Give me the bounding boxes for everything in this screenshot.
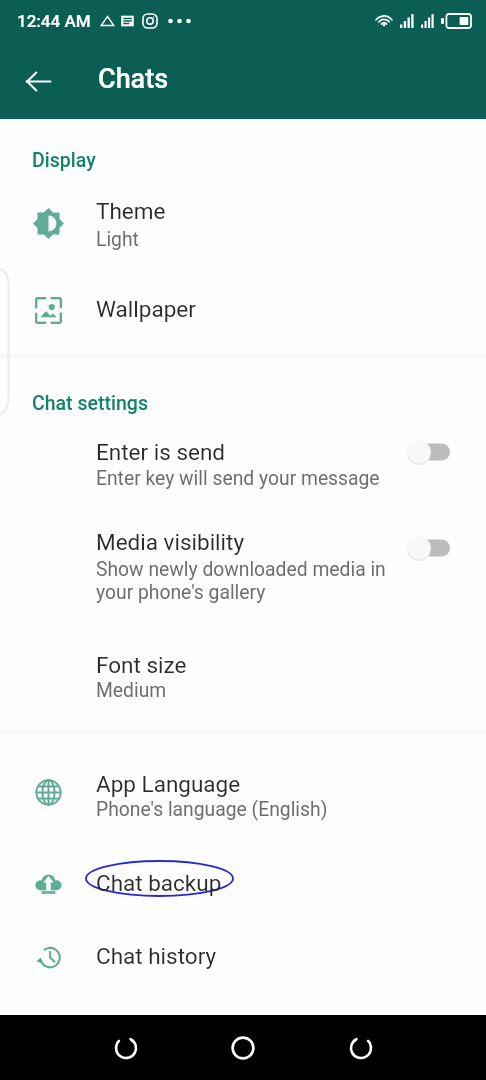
button[interactable]: Chat history (0, 928, 486, 980)
button[interactable]: App Language (0, 756, 486, 826)
button[interactable]: Theme (0, 182, 486, 254)
staticText: Chat history (96, 943, 217, 969)
button[interactable]: Media visibility (0, 524, 486, 616)
staticText: Enter is send (96, 439, 226, 465)
staticText: App Language (96, 771, 241, 797)
button[interactable]: Enter is send (0, 424, 486, 494)
staticText: 12:44 AM (17, 11, 91, 31)
staticText: Wallpaper (96, 296, 196, 322)
button[interactable]: Media visibility (398, 526, 460, 570)
staticText: Chat settings (32, 392, 148, 415)
button[interactable]: Back (14, 57, 62, 105)
button[interactable]: Home (216, 1021, 269, 1074)
button[interactable]: Back (334, 1021, 387, 1074)
staticText: Chats (98, 63, 169, 95)
staticText: your phone's gallery (96, 581, 266, 604)
staticText: Display (32, 149, 96, 172)
staticText: Font size (96, 652, 187, 678)
staticText: Enter key will send your message (96, 467, 380, 490)
staticText: Light (96, 228, 139, 251)
button[interactable]: Enter is send (398, 430, 460, 474)
button[interactable]: Recent apps (99, 1021, 152, 1074)
staticText: Phone's language (English) (96, 798, 328, 821)
staticText: Medium (96, 679, 167, 702)
button[interactable]: Chat backup (0, 854, 486, 906)
staticText: Media visibility (96, 529, 245, 555)
staticText: Chat backup (96, 870, 222, 896)
staticText: Theme (96, 198, 166, 224)
button[interactable]: Wallpaper (0, 280, 486, 332)
button[interactable]: Font size (0, 636, 486, 706)
staticText: Show newly downloaded media in (96, 558, 386, 581)
